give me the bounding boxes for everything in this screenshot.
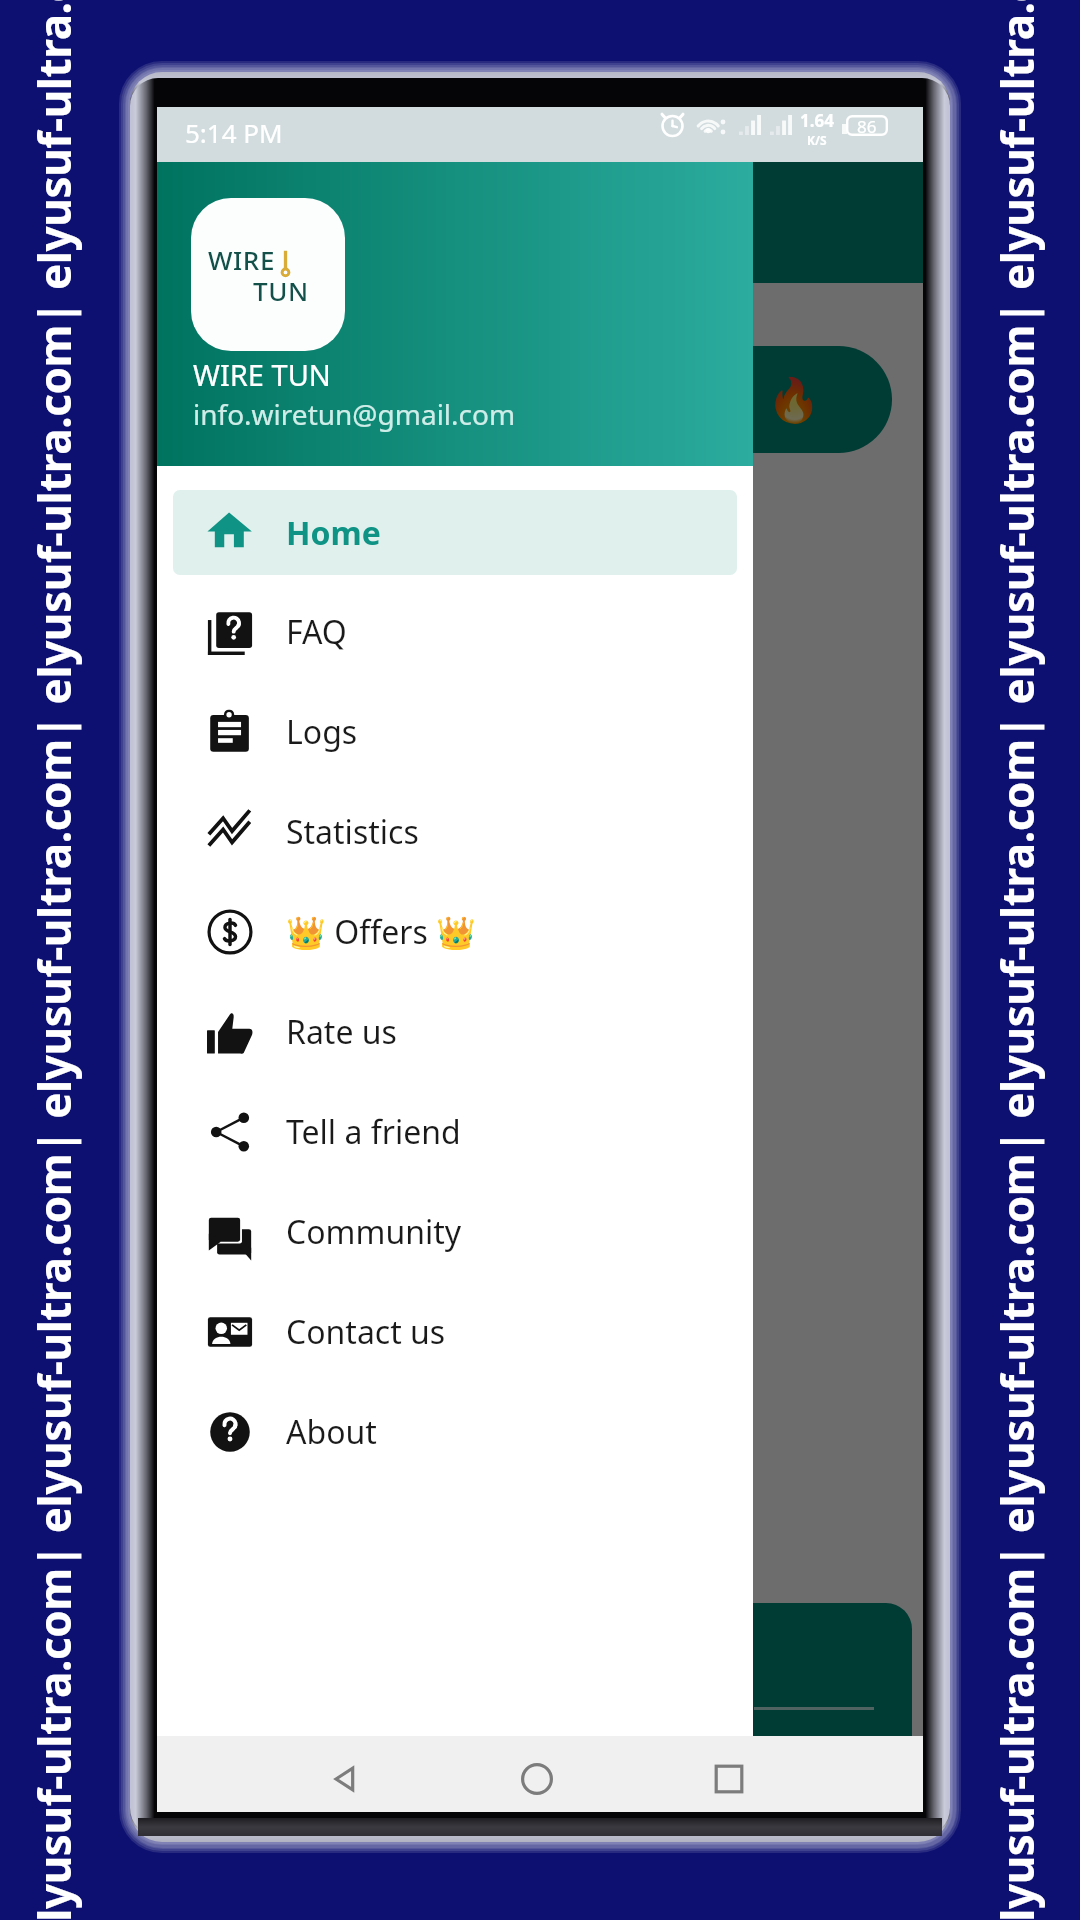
staticText: K/S	[807, 132, 827, 148]
button[interactable]: Back	[311, 1745, 379, 1813]
staticText: WIRE TUN	[193, 355, 331, 394]
button[interactable]: Logs	[173, 682, 737, 782]
staticText: 1.64	[800, 109, 834, 132]
button[interactable]: Rate us	[173, 982, 737, 1082]
button[interactable]: Recents	[695, 1745, 763, 1813]
button[interactable]: FAQ	[173, 582, 737, 682]
staticText: Home	[286, 511, 381, 555]
button[interactable]: Community	[173, 1182, 737, 1282]
staticText: 86	[857, 115, 877, 136]
staticText: Rate us	[286, 1010, 397, 1054]
staticText: Contact us	[286, 1310, 446, 1354]
staticText: 👑 Offers 👑	[286, 910, 476, 954]
staticText: info.wiretun@gmail.com	[193, 395, 516, 433]
staticText: Statistics	[286, 810, 419, 854]
staticText: Logs	[286, 710, 358, 754]
button[interactable]: Home	[173, 490, 737, 575]
staticText: elyusuf-ultra.com| elyusuf-ultra.com| el…	[24, 0, 84, 1920]
staticText: 5:14 PM	[185, 115, 283, 150]
staticText: TUN	[253, 273, 309, 308]
staticText: FAQ	[286, 610, 347, 654]
button[interactable]: Tell a friend	[173, 1082, 737, 1182]
button[interactable]: Account header	[157, 162, 753, 466]
staticText: About	[286, 1410, 377, 1454]
button[interactable]: About	[173, 1382, 737, 1482]
staticText: WIRE	[208, 242, 275, 277]
button[interactable]: Contact us	[173, 1282, 737, 1382]
button[interactable]: Home	[503, 1745, 571, 1813]
button[interactable]: Boost speed	[157, 346, 892, 453]
button[interactable]: 👑 Offers 👑	[173, 882, 737, 982]
button[interactable]: Statistics	[173, 782, 737, 882]
staticText: 🔥	[767, 375, 821, 425]
staticText: Community	[286, 1210, 462, 1254]
staticText: elyusuf-ultra.com| elyusuf-ultra.com| el…	[987, 0, 1047, 1920]
staticText: Tell a friend	[286, 1110, 461, 1154]
